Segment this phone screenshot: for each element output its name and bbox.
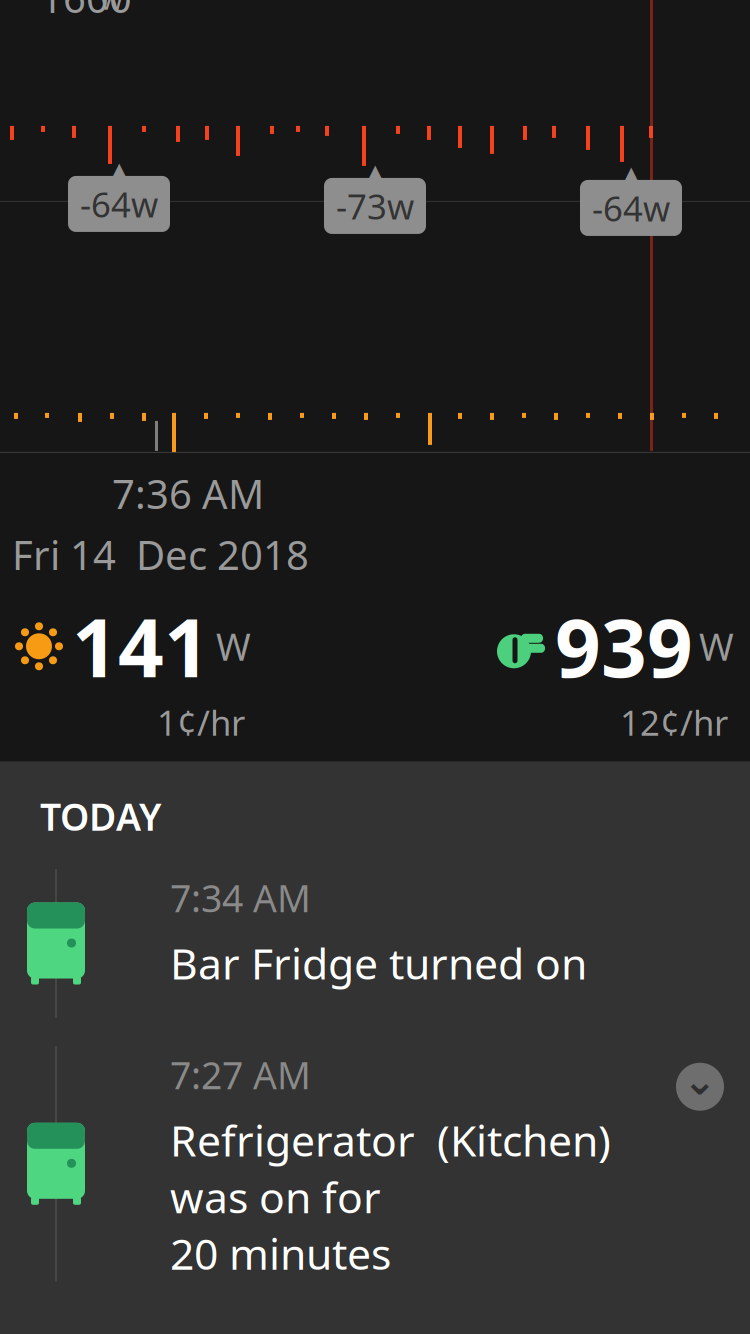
- staticText: W: [216, 621, 251, 671]
- staticText: ▲: [111, 158, 127, 182]
- staticText: 7:36 AM: [112, 467, 264, 520]
- staticText: Refrigerator (Kitchen) was on for 20 min…: [170, 1112, 611, 1282]
- staticText: 1600: [40, 0, 132, 24]
- staticText: 12¢/hr: [620, 699, 728, 745]
- staticText: 939: [555, 593, 693, 699]
- staticText: ▲: [367, 160, 383, 184]
- staticText: W: [699, 621, 734, 671]
- button[interactable]: 7:34 AM: [0, 855, 750, 1032]
- staticText: 7:27 AM: [170, 1050, 311, 1100]
- staticText: ▲: [623, 162, 639, 186]
- staticText: 1¢/hr: [157, 699, 245, 745]
- staticText: TODAY: [40, 791, 162, 841]
- staticText: w: [100, 0, 123, 18]
- staticText: 141: [72, 593, 210, 699]
- button[interactable]: 7:27 AM: [0, 1032, 750, 1296]
- staticText: -73w: [336, 183, 414, 229]
- staticText: Bar Fridge turned on: [170, 935, 587, 991]
- staticText: -64w: [80, 181, 158, 227]
- staticText: -64w: [592, 185, 670, 231]
- staticText: Fri 14 Dec 2018: [12, 528, 309, 581]
- staticText: 7:34 AM: [170, 873, 311, 923]
- staticText: ⌄: [683, 1058, 717, 1103]
